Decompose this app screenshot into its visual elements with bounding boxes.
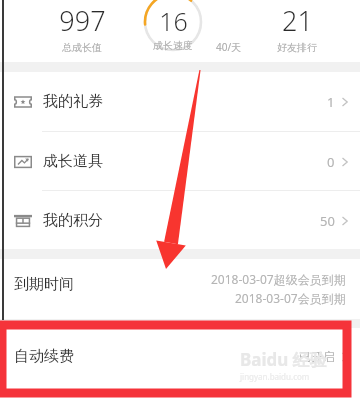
button[interactable]: 到期时间 [0,259,360,319]
button[interactable]: 我的积分 [0,191,360,250]
staticText: 我的积分 [43,211,103,230]
staticText: 自动续费 [14,347,74,366]
staticText: 997 [59,2,106,39]
button[interactable]: 成长道具 [0,132,360,191]
staticText: 到期时间 [14,275,74,294]
button[interactable]: 997 [32,2,132,54]
staticText: 好友排行 [277,41,317,54]
staticText: 40/天 [216,40,242,54]
staticText: 1 [327,93,335,111]
button[interactable]: 我的礼券 [0,72,360,131]
button[interactable]: 自动续费 [0,328,360,384]
staticText: 16 [159,4,188,38]
staticText: 2018-03-07会员到期 [235,290,346,306]
staticText: 成长道具 [43,152,103,171]
staticText: 21 [282,2,313,39]
button[interactable]: 21 [252,2,342,54]
staticText: 50 [320,212,335,230]
staticText: 我的礼券 [43,92,103,111]
staticText: 成长速度 [153,39,193,52]
staticText: 2018-03-07超级会员到期 [211,271,346,287]
staticText: 总成长值 [62,41,102,54]
staticText: 已开启 [299,349,335,364]
staticText: Baidu 经验 [240,348,327,371]
staticText: jingyan.baidu.com [240,371,310,382]
button[interactable]: 16 [133,0,227,60]
staticText: 0 [327,153,335,171]
